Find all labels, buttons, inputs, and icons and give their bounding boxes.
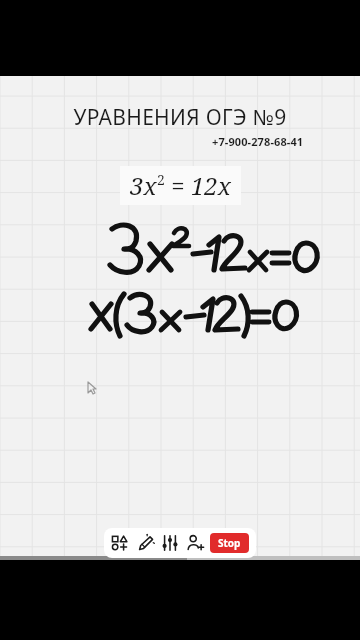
button[interactable]: Stop	[210, 533, 249, 553]
staticText: +7-900-278-68-41	[212, 134, 304, 149]
button[interactable]: Pen tool	[136, 534, 154, 552]
button[interactable]: Settings	[161, 534, 179, 552]
button[interactable]: Add person	[186, 534, 204, 552]
staticText: 3x	[130, 169, 157, 202]
staticText: = 12x	[165, 169, 231, 202]
staticText: 2	[157, 170, 165, 189]
staticText: Stop	[218, 536, 241, 550]
staticText: УРАВНЕНИЯ ОГЭ №9	[0, 103, 360, 132]
button[interactable]: Add shape	[111, 534, 129, 552]
